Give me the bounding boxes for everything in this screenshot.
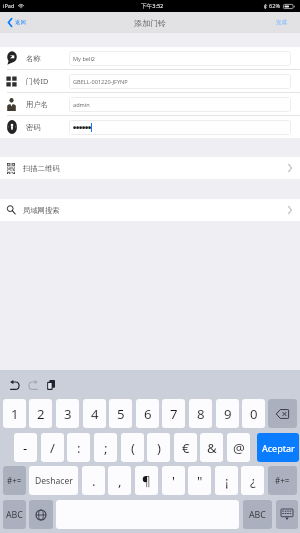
staticText: 3 bbox=[64, 405, 72, 423]
button[interactable]: 扫描二维码 bbox=[0, 157, 300, 179]
staticText: ABC bbox=[249, 509, 266, 521]
staticText: #+= bbox=[275, 475, 290, 486]
staticText: 7 bbox=[170, 405, 178, 423]
button[interactable]: Deshacer bbox=[29, 466, 78, 495]
staticText: 局域网搜索 bbox=[23, 206, 60, 215]
button[interactable]: Paste bbox=[45, 376, 57, 394]
staticText: 8 bbox=[197, 405, 205, 423]
button[interactable]: ¡ bbox=[215, 466, 238, 495]
button[interactable]: ( bbox=[121, 433, 144, 462]
staticText: 完成 bbox=[276, 19, 287, 26]
staticText: ' bbox=[172, 472, 175, 490]
button[interactable]: ) bbox=[147, 433, 170, 462]
button[interactable]: ABC bbox=[243, 500, 272, 529]
staticText: ¶ bbox=[142, 472, 151, 490]
button[interactable]: 3 bbox=[56, 399, 79, 428]
staticText: 用户名 bbox=[26, 100, 48, 109]
staticText: ¿ bbox=[250, 472, 256, 490]
staticText: / bbox=[50, 439, 55, 457]
button[interactable]: 2 bbox=[29, 399, 52, 428]
button[interactable]: Hide keyboard bbox=[276, 500, 298, 529]
button[interactable]: @ bbox=[227, 433, 250, 462]
staticText: 4 bbox=[91, 405, 99, 423]
button[interactable]: - bbox=[14, 433, 37, 462]
button[interactable]: Redo bbox=[27, 376, 39, 394]
button[interactable]: #+= bbox=[3, 466, 26, 495]
staticText: : bbox=[77, 439, 81, 457]
button[interactable]: 1 bbox=[3, 399, 26, 428]
staticText: ; bbox=[104, 439, 108, 457]
button[interactable]: ' bbox=[162, 466, 185, 495]
button[interactable]: 用户名 bbox=[0, 93, 300, 115]
button[interactable]: 密码 bbox=[0, 116, 300, 138]
button[interactable]: Aceptar bbox=[257, 433, 299, 462]
button[interactable]: " bbox=[188, 466, 211, 495]
button[interactable]: 局域网搜索 bbox=[0, 199, 300, 221]
button[interactable]: 门铃ID bbox=[0, 70, 300, 92]
staticText: ) bbox=[157, 439, 161, 457]
button[interactable]: ¿ bbox=[241, 466, 264, 495]
button[interactable]: € bbox=[174, 433, 197, 462]
button[interactable]: 7 bbox=[162, 399, 185, 428]
button[interactable]: / bbox=[41, 433, 64, 462]
staticText: @ bbox=[233, 439, 245, 457]
staticText: 0 bbox=[250, 405, 258, 423]
staticText: ¡ bbox=[225, 472, 229, 490]
button[interactable]: ABC bbox=[3, 500, 26, 529]
button[interactable]: 名称 bbox=[0, 47, 300, 69]
staticText: 返回 bbox=[15, 19, 26, 26]
staticText: 添加门铃 bbox=[134, 18, 166, 28]
staticText: #+= bbox=[7, 475, 22, 486]
staticText: & bbox=[207, 439, 217, 457]
button[interactable]: 6 bbox=[136, 399, 159, 428]
staticText: 门铃ID bbox=[26, 76, 49, 86]
button[interactable]: 返回 bbox=[0, 12, 32, 33]
staticText: 扫描二维码 bbox=[23, 164, 60, 173]
button[interactable]: Undo bbox=[9, 376, 21, 394]
button[interactable]: . bbox=[82, 466, 105, 495]
staticText: 9 bbox=[224, 405, 232, 423]
staticText: 1 bbox=[11, 405, 19, 423]
staticText: 5 bbox=[117, 405, 125, 423]
button[interactable]: 4 bbox=[83, 399, 106, 428]
button[interactable]: , bbox=[108, 466, 131, 495]
staticText: GBELL-001220-JFYNP bbox=[73, 78, 128, 86]
staticText: iPad bbox=[3, 2, 15, 10]
staticText: " bbox=[197, 472, 203, 490]
button[interactable]: Change keyboard bbox=[29, 500, 53, 529]
staticText: 2 bbox=[37, 405, 45, 423]
button[interactable]: ¶ bbox=[135, 466, 158, 495]
staticText: Aceptar bbox=[262, 442, 295, 454]
staticText: 名称 bbox=[26, 54, 41, 63]
staticText: ABC bbox=[6, 509, 23, 521]
staticText: , bbox=[118, 472, 122, 490]
button[interactable]: 8 bbox=[189, 399, 212, 428]
staticText: . bbox=[92, 472, 96, 490]
button[interactable]: #+= bbox=[268, 466, 297, 495]
button[interactable]: ; bbox=[94, 433, 117, 462]
staticText: Deshacer bbox=[35, 475, 73, 487]
button[interactable]: 9 bbox=[216, 399, 239, 428]
button[interactable]: 0 bbox=[242, 399, 265, 428]
staticText: 下午3:52 bbox=[141, 2, 164, 10]
button[interactable]: : bbox=[67, 433, 90, 462]
staticText: My bell2 bbox=[73, 55, 96, 63]
staticText: - bbox=[23, 439, 28, 457]
button[interactable]: & bbox=[200, 433, 223, 462]
staticText: 62% bbox=[269, 2, 281, 10]
staticText: admin bbox=[73, 101, 90, 109]
button[interactable]: Backspace bbox=[268, 399, 297, 428]
staticText: ( bbox=[131, 439, 135, 457]
staticText: € bbox=[182, 439, 190, 457]
button[interactable]: 5 bbox=[109, 399, 132, 428]
staticText: 密码 bbox=[26, 123, 41, 132]
button[interactable]: 完成 bbox=[270, 12, 300, 33]
staticText: 6 bbox=[144, 405, 152, 423]
